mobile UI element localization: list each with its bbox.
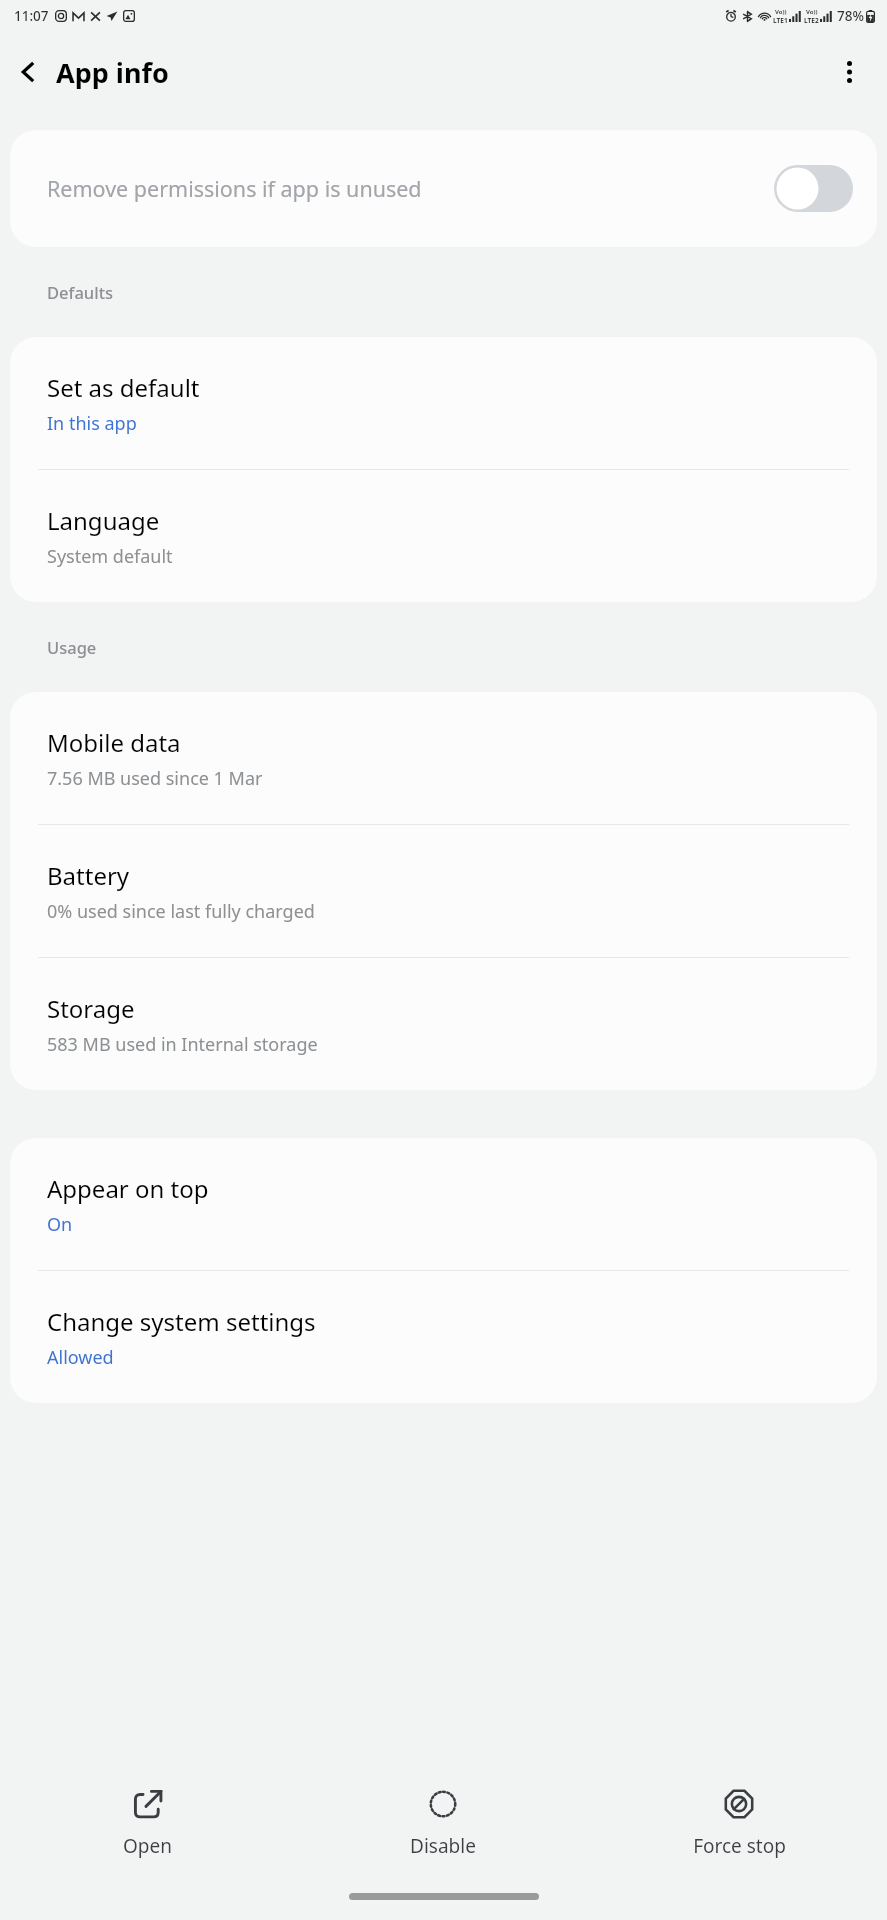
staticText: Storage [47,992,135,1025]
staticText: In this app [47,411,137,436]
button[interactable]: Force stop [591,1767,887,1879]
staticText: Force stop [693,1833,786,1859]
staticText: Change system settings [47,1305,316,1338]
button[interactable]: Storage [10,958,877,1090]
staticText: Disable [410,1833,476,1859]
staticText: 7.56 MB used since 1 Mar [47,766,263,791]
staticText: Set as default [47,371,200,404]
staticText: Vo)) [806,8,818,16]
staticText: Remove permissions if app is unused [47,174,748,203]
staticText: 0% used since last fully charged [47,899,315,924]
button[interactable]: More options [821,44,877,100]
staticText: System default [47,544,173,569]
button[interactable]: Change system settings [10,1271,877,1403]
button[interactable]: Language [10,470,877,602]
staticText: Appear on top [47,1172,209,1205]
staticText: Vo)) [775,8,787,16]
staticText: Defaults [47,281,113,303]
button[interactable]: Appear on top [10,1138,877,1270]
staticText: Language [47,504,160,537]
staticText: LTE2 [804,16,819,25]
button[interactable]: Mobile data [10,692,877,824]
button[interactable]: Open [0,1767,295,1879]
staticText: LTE1 [773,16,788,25]
button[interactable]: Battery [10,825,877,957]
staticText: Open [123,1833,172,1859]
staticText: Battery [47,859,130,892]
staticText: Mobile data [47,726,181,759]
staticText: App info [56,54,169,91]
staticText: 583 MB used in Internal storage [47,1032,318,1057]
button[interactable]: Disable [295,1767,591,1879]
button[interactable]: Back [0,44,56,100]
staticText: Allowed [47,1345,114,1370]
button[interactable]: Remove permissions if app is unused [10,130,877,247]
staticText: On [47,1212,73,1237]
staticText: Usage [47,636,97,658]
staticText: 78% [837,7,864,25]
staticText: 11:07 [14,7,49,25]
button[interactable]: Set as default [10,337,877,469]
button[interactable]: Remove permissions toggle [774,165,853,212]
